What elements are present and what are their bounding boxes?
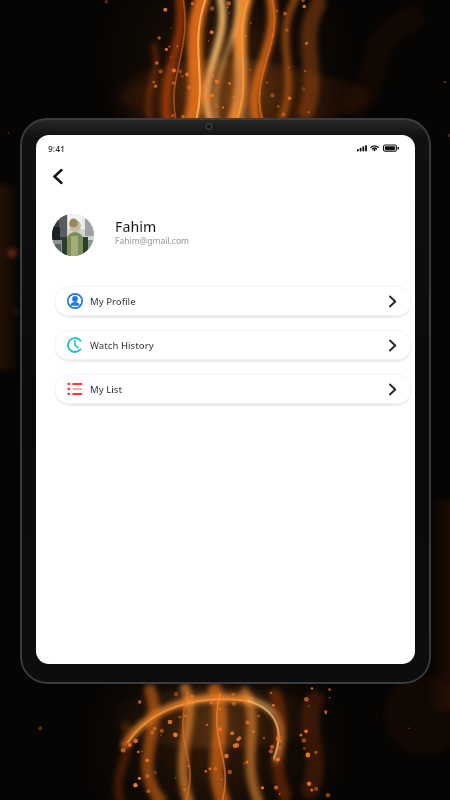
staticText: Watch History xyxy=(90,339,154,352)
staticText: Fahim xyxy=(115,217,157,236)
staticText: 9:41 xyxy=(48,143,65,155)
button[interactable]: My Profile xyxy=(54,286,412,316)
staticText: Fahim@gmail.com xyxy=(115,235,189,247)
button[interactable]: My List xyxy=(54,374,412,404)
staticText: My Profile xyxy=(90,295,136,308)
button[interactable] xyxy=(36,161,76,191)
button[interactable]: Watch History xyxy=(54,330,412,360)
staticText: My List xyxy=(90,383,123,396)
